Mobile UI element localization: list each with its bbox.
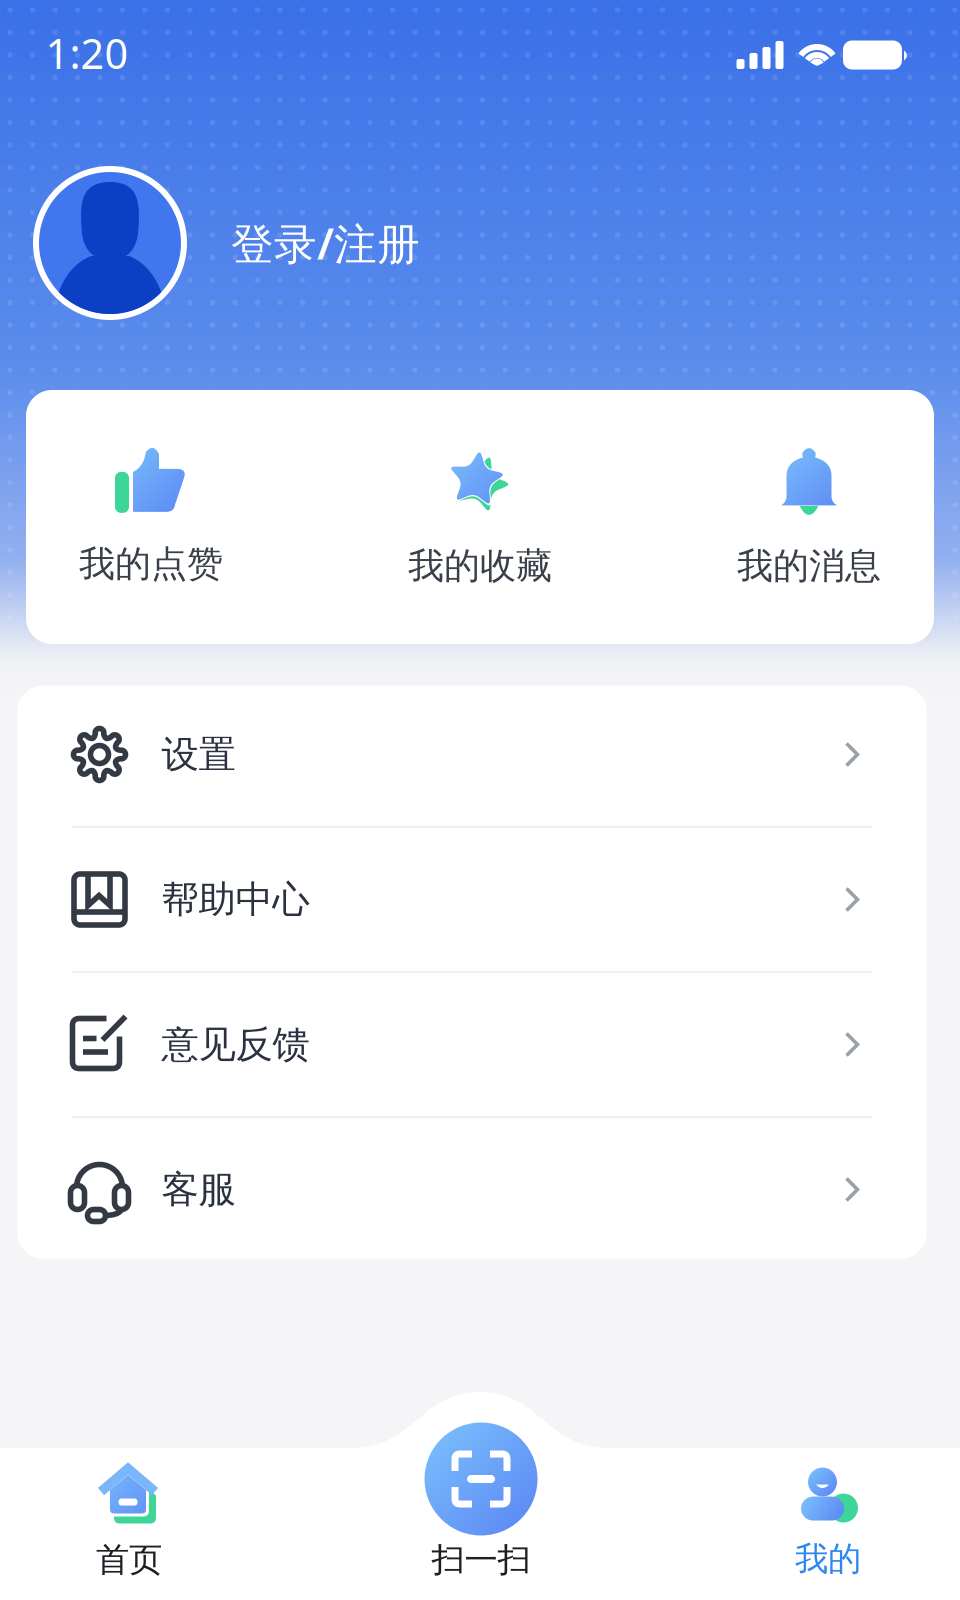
button[interactable]: 我的: [698, 1440, 958, 1600]
button[interactable]: 设置: [17, 683, 926, 826]
staticText: 1:20: [45, 26, 128, 80]
button[interactable]: 我的收藏: [330, 390, 630, 644]
button[interactable]: 扫一扫: [424, 1422, 537, 1535]
button[interactable]: 意见反馈: [17, 973, 926, 1116]
button[interactable]: 扫一扫: [351, 1440, 611, 1600]
staticText: 我的: [795, 1538, 861, 1579]
staticText: 我的收藏: [408, 544, 552, 588]
staticText: 首页: [96, 1539, 162, 1580]
staticText: 意见反馈: [161, 1022, 309, 1067]
staticText: 帮助中心: [161, 877, 309, 922]
staticText: 我的消息: [737, 544, 881, 588]
button[interactable]: 首页: [0, 1440, 259, 1600]
staticText: 设置: [161, 732, 235, 777]
staticText: 我的点赞: [79, 542, 223, 586]
staticText: 客服: [161, 1167, 235, 1212]
staticText: 扫一扫: [431, 1539, 530, 1580]
button[interactable]: 客服: [17, 1118, 926, 1261]
button[interactable]: 登录/注册: [231, 213, 531, 273]
button[interactable]: 帮助中心: [17, 828, 926, 971]
button[interactable]: 我的点赞: [1, 390, 301, 644]
button[interactable]: 我的消息: [659, 390, 959, 644]
staticText: 登录/注册: [231, 215, 420, 271]
